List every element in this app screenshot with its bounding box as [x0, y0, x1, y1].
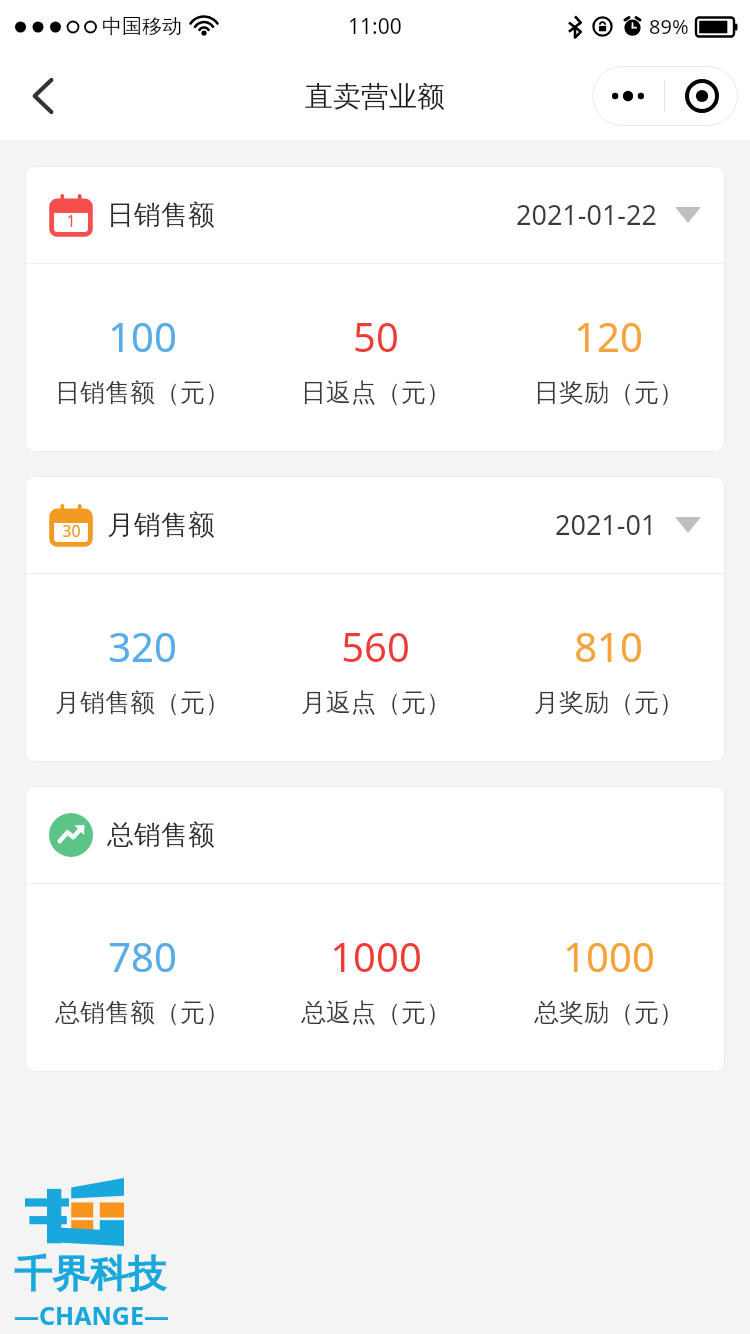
staticText: 810 [574, 619, 643, 673]
staticText: 100 [108, 309, 177, 363]
staticText: 2021-01-22 [516, 196, 657, 233]
staticText: 780 [108, 929, 177, 983]
button[interactable]: Back [14, 67, 72, 125]
staticText: 日销售额（元） [55, 377, 230, 408]
staticText: —CHANGE— [14, 1298, 169, 1332]
button[interactable]: 1 [25, 166, 725, 263]
button[interactable]: Close [665, 66, 738, 126]
staticText: 月销售额 [107, 508, 215, 542]
staticText: 320 [108, 619, 177, 673]
staticText: 1000 [330, 929, 422, 983]
staticText: 日返点（元） [301, 377, 451, 408]
staticText: 1 [66, 210, 76, 232]
staticText: 月奖励（元） [534, 687, 684, 718]
staticText: 日奖励（元） [534, 377, 684, 408]
staticText: 1000 [563, 929, 655, 983]
staticText: 120 [574, 309, 643, 363]
button[interactable]: 30 [25, 476, 725, 573]
staticText: 总销售额 [107, 818, 215, 852]
staticText: 月返点（元） [301, 687, 451, 718]
staticText: 11:00 [348, 12, 402, 41]
button[interactable]: More [592, 66, 664, 126]
staticText: 50 [353, 309, 399, 363]
staticText: 总销售额（元） [55, 997, 230, 1028]
button[interactable]: 总销售额 [25, 786, 725, 883]
staticText: 中国移动 [102, 14, 182, 39]
staticText: 月销售额（元） [55, 687, 230, 718]
staticText: 总奖励（元） [534, 997, 684, 1028]
staticText: 560 [341, 619, 410, 673]
staticText: 日销售额 [107, 198, 215, 232]
staticText: 直卖营业额 [305, 79, 445, 114]
staticText: 2021-01 [555, 506, 657, 543]
staticText: 89% [649, 13, 689, 40]
staticText: 30 [62, 520, 81, 542]
staticText: 总返点（元） [301, 997, 451, 1028]
staticText: 千界科技 [14, 1250, 166, 1298]
